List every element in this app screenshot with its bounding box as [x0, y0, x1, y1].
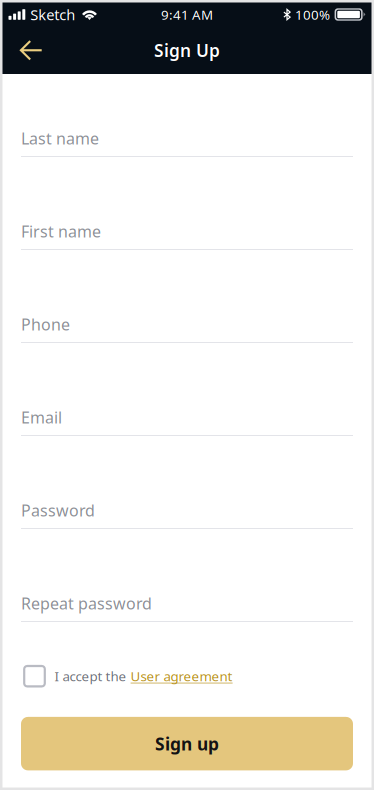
- button[interactable]: First name: [21, 157, 353, 250]
- staticText: I accept the: [55, 667, 127, 685]
- staticText: Repeat password: [21, 593, 152, 614]
- button[interactable]: Email: [21, 343, 353, 436]
- button[interactable]: Back: [10, 27, 52, 74]
- staticText: Password: [21, 500, 95, 521]
- button[interactable]: Sign up: [21, 717, 353, 770]
- staticText: First name: [21, 221, 101, 242]
- staticText: User agreement: [131, 667, 233, 685]
- button[interactable]: Last name: [21, 74, 353, 157]
- staticText: Last name: [21, 128, 99, 149]
- button[interactable]: Password: [21, 436, 353, 529]
- staticText: Email: [21, 407, 62, 428]
- staticText: Phone: [21, 314, 70, 335]
- staticText: Sign Up: [154, 39, 220, 62]
- staticText: 100%: [295, 6, 330, 23]
- staticText: 9:41 AM: [161, 6, 213, 23]
- button[interactable]: Accept the user agreement: [21, 666, 55, 686]
- button[interactable]: User agreement: [127, 667, 233, 685]
- button[interactable]: Phone: [21, 250, 353, 343]
- button[interactable]: Repeat password: [21, 529, 353, 622]
- staticText: Sketch: [30, 5, 75, 24]
- staticText: Sign up: [155, 732, 219, 755]
